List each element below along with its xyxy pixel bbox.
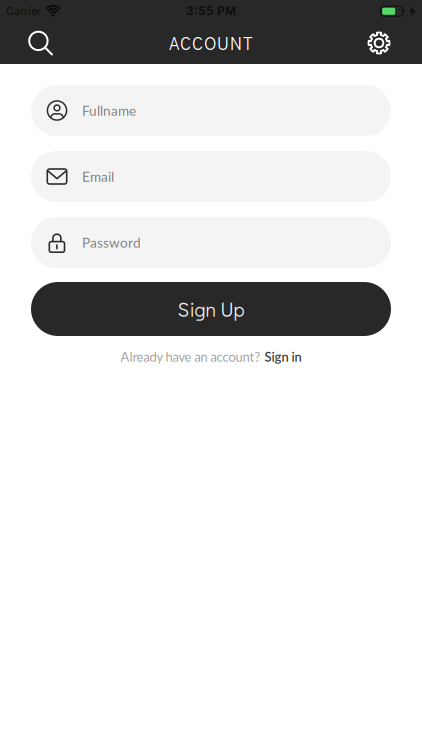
staticText: Password [82, 234, 141, 251]
button[interactable]: Sign in [264, 349, 301, 364]
button[interactable]: Search [0, 30, 53, 55]
button[interactable]: Settings [368, 32, 422, 54]
button[interactable]: Password [31, 217, 391, 268]
staticText: Email [82, 168, 114, 185]
staticText: Fullname [82, 102, 136, 119]
staticText: Carrier [6, 5, 41, 17]
staticText: 3:55 PM [186, 4, 236, 18]
staticText: Sign in [264, 349, 301, 364]
staticText: Already have an account? [120, 349, 260, 364]
button[interactable]: Fullname [31, 85, 391, 136]
staticText: Sign Up [177, 296, 244, 322]
button[interactable]: Email [31, 151, 391, 202]
button[interactable]: Sign Up [31, 282, 391, 336]
staticText: A C C O U N T [169, 32, 253, 54]
